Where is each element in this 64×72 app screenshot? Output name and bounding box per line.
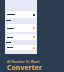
button[interactable] <box>6 24 36 32</box>
staticText: Converter <box>7 63 43 72</box>
button[interactable] <box>6 11 36 18</box>
button[interactable] <box>6 34 36 40</box>
staticText: AI Number To Word <box>7 59 40 64</box>
button[interactable] <box>6 45 36 50</box>
